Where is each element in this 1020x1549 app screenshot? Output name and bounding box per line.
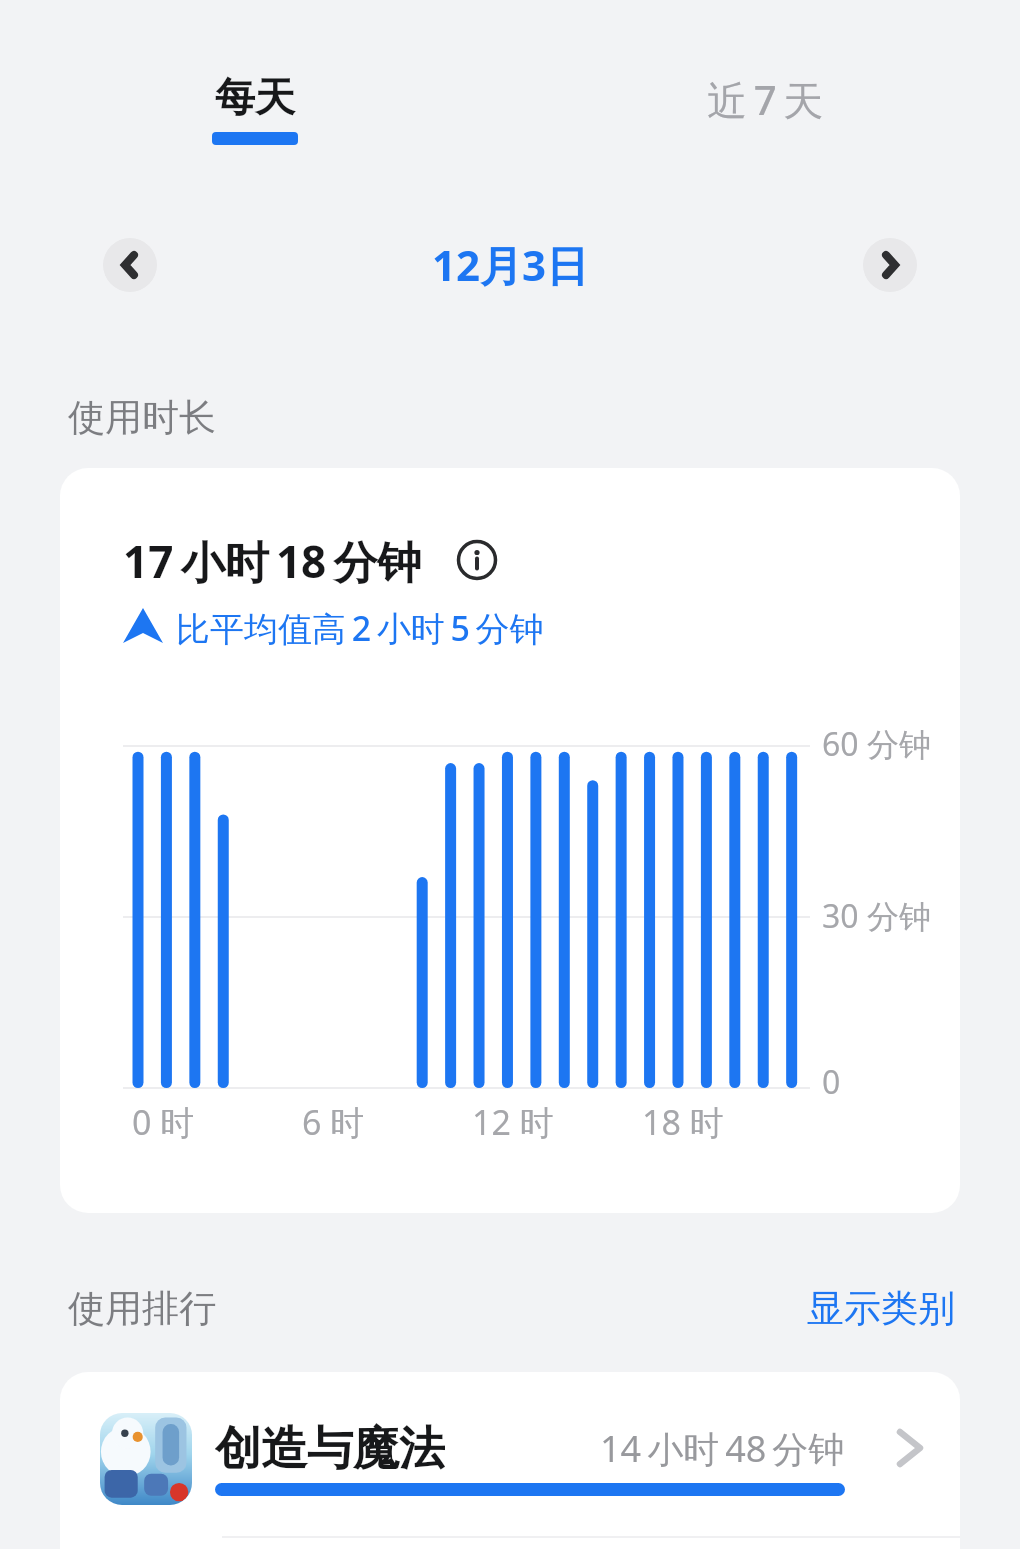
staticText: 14 小时 48 分钟	[600, 1424, 845, 1472]
staticText: 近 7 天	[707, 72, 824, 127]
staticText: 60 分钟	[822, 722, 931, 766]
button[interactable]: 每天	[175, 72, 335, 164]
staticText: 0 时	[132, 1099, 195, 1145]
button[interactable]: 创造与魔法	[60, 1372, 960, 1549]
staticText: 使用排行	[68, 1285, 216, 1332]
staticText: 12 时	[472, 1099, 554, 1145]
staticText: 12月3日	[432, 236, 589, 293]
staticText: 30 分钟	[822, 894, 931, 938]
staticText: 显示类别	[807, 1285, 955, 1332]
button[interactable]: 显示类别	[700, 1283, 955, 1333]
staticText: 18 时	[642, 1099, 724, 1145]
staticText: 0	[822, 1060, 841, 1104]
staticText: 17 小时 18 分钟	[123, 531, 422, 591]
staticText: 6 时	[302, 1099, 365, 1145]
staticText: 使用时长	[68, 394, 216, 441]
staticText: 每天	[215, 72, 295, 122]
staticText: 创造与魔法	[215, 1420, 445, 1472]
button[interactable]: 12月3日	[360, 234, 660, 294]
button[interactable]	[103, 238, 157, 292]
button[interactable]	[863, 238, 917, 292]
button[interactable]: 近 7 天	[685, 72, 845, 142]
button[interactable]	[456, 539, 498, 581]
staticText: 比平均值高 2 小时 5 分钟	[176, 605, 544, 651]
